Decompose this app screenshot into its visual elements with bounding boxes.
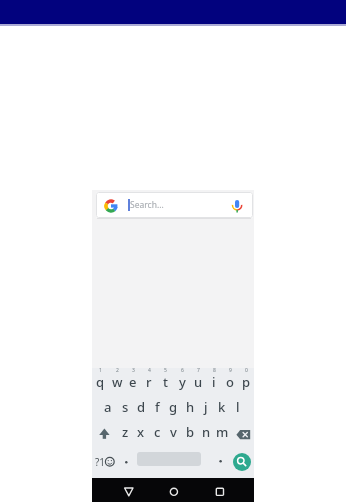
staticText: ?1: [95, 455, 106, 469]
staticText: c: [154, 423, 161, 441]
button[interactable]: [233, 453, 251, 471]
button[interactable]: e: [125, 373, 141, 391]
staticText: w: [112, 373, 123, 391]
staticText: s: [122, 398, 129, 416]
staticText: x: [137, 423, 145, 441]
button[interactable]: i: [206, 373, 222, 391]
button[interactable]: 5: [157, 366, 173, 374]
button[interactable]: 8: [206, 366, 222, 374]
staticText: k: [218, 398, 226, 416]
button[interactable]: [120, 483, 138, 501]
button[interactable]: k: [214, 397, 230, 417]
staticText: t: [163, 373, 168, 391]
button[interactable]: 7: [190, 366, 206, 374]
button[interactable]: v: [165, 422, 181, 442]
button[interactable]: a: [100, 397, 116, 417]
button[interactable]: 0: [238, 366, 254, 374]
button[interactable]: x: [133, 422, 149, 442]
staticText: m: [216, 423, 229, 441]
button[interactable]: z: [117, 422, 133, 442]
staticText: d: [137, 398, 146, 416]
button[interactable]: w: [109, 373, 125, 391]
button[interactable]: 9: [222, 366, 238, 374]
staticText: f: [155, 398, 160, 416]
staticText: r: [146, 373, 152, 391]
staticText: 0: [245, 367, 248, 374]
button[interactable]: r: [141, 373, 157, 391]
staticText: 9: [229, 367, 232, 374]
staticText: o: [226, 373, 234, 391]
button[interactable]: l: [230, 397, 246, 417]
staticText: n: [202, 423, 211, 441]
button[interactable]: u: [190, 373, 206, 391]
button[interactable]: 1: [92, 366, 108, 374]
staticText: 2: [116, 367, 119, 374]
staticText: 6: [181, 367, 184, 374]
button[interactable]: g: [165, 397, 181, 417]
staticText: u: [194, 373, 203, 391]
staticText: Search...: [130, 199, 164, 211]
button[interactable]: 2: [109, 366, 125, 374]
button[interactable]: [235, 428, 252, 441]
staticText: a: [104, 398, 112, 416]
staticText: 5: [164, 367, 167, 374]
button[interactable]: f: [149, 397, 165, 417]
staticText: 4: [148, 367, 151, 374]
staticText: i: [212, 373, 216, 391]
staticText: j: [204, 398, 208, 416]
button[interactable]: t: [157, 373, 173, 391]
staticText: y: [179, 373, 186, 391]
staticText: 8: [213, 367, 216, 374]
button[interactable]: m: [214, 422, 230, 442]
button[interactable]: 4: [141, 366, 157, 374]
button[interactable]: b: [182, 422, 198, 442]
staticText: v: [170, 423, 177, 441]
button[interactable]: [165, 483, 183, 501]
staticText: 3: [132, 367, 135, 374]
staticText: l: [236, 398, 240, 416]
button[interactable]: o: [222, 373, 238, 391]
button[interactable]: 6: [174, 366, 190, 374]
button[interactable]: [211, 483, 229, 501]
button[interactable]: q: [92, 373, 108, 391]
button[interactable]: j: [198, 397, 214, 417]
button[interactable]: d: [133, 397, 149, 417]
staticText: q: [96, 373, 105, 391]
staticText: 1: [99, 367, 102, 374]
button[interactable]: [96, 424, 113, 441]
button[interactable]: ?1: [93, 455, 107, 469]
button[interactable]: c: [149, 422, 165, 442]
staticText: b: [186, 423, 195, 441]
staticText: h: [186, 398, 195, 416]
staticText: e: [129, 373, 137, 391]
staticText: 7: [197, 367, 200, 374]
button[interactable]: y: [174, 373, 190, 391]
staticText: g: [169, 398, 178, 416]
button[interactable]: [96, 192, 253, 218]
button[interactable]: p: [238, 373, 254, 391]
button[interactable]: s: [117, 397, 133, 417]
button[interactable]: [105, 457, 115, 467]
button[interactable]: [229, 195, 245, 214]
staticText: z: [122, 423, 129, 441]
button[interactable]: 3: [125, 366, 141, 374]
staticText: p: [242, 373, 251, 391]
button[interactable]: n: [198, 422, 214, 442]
button[interactable]: h: [182, 397, 198, 417]
